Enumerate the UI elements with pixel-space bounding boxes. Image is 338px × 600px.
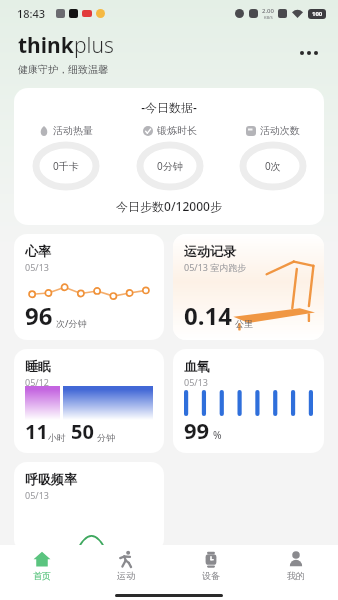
staticText: 11: [25, 418, 48, 445]
staticText: 50: [71, 418, 94, 445]
staticText: 公里: [235, 318, 253, 329]
staticText: 05/13: [184, 376, 208, 388]
staticText: 锻炼时长: [157, 124, 197, 137]
button[interactable]: 心率: [14, 234, 164, 340]
staticText: 05/13: [25, 489, 49, 501]
staticText: 分钟: [97, 432, 115, 443]
staticText: 0千卡: [53, 159, 79, 173]
staticText: 睡眠: [25, 358, 51, 374]
staticText: 运动: [117, 570, 135, 581]
button[interactable]: 运动: [84, 545, 168, 591]
button[interactable]: 呼吸频率: [14, 462, 164, 552]
staticText: 05/13 室内跑步: [184, 261, 247, 273]
staticText: 05/12: [25, 376, 49, 388]
staticText: think: [18, 31, 74, 60]
staticText: 活动次数: [260, 124, 300, 137]
staticText: plus: [74, 31, 114, 60]
staticText: 心率: [25, 243, 51, 259]
staticText: 次/分钟: [56, 317, 87, 329]
staticText: 小时: [48, 432, 66, 443]
staticText: 健康守护，细致温馨: [18, 63, 108, 76]
button[interactable]: More options: [294, 41, 324, 65]
staticText: 活动热量: [53, 124, 93, 137]
button[interactable]: -今日数据-: [14, 88, 324, 225]
staticText: 0次: [265, 159, 281, 173]
staticText: 0.14: [184, 299, 232, 332]
staticText: KB/S: [264, 15, 273, 20]
staticText: 首页: [33, 570, 51, 581]
staticText: %: [213, 428, 222, 442]
staticText: 100: [312, 10, 323, 18]
staticText: 今日步数0/12000步: [14, 198, 324, 214]
button[interactable]: 首页: [0, 545, 84, 591]
staticText: 18:43: [17, 6, 46, 21]
staticText: 96: [25, 299, 53, 332]
staticText: 0分钟: [157, 159, 183, 173]
staticText: 运动记录: [184, 243, 236, 259]
staticText: 05/13: [25, 261, 49, 273]
staticText: 设备: [202, 570, 220, 581]
button[interactable]: 血氧: [173, 349, 324, 453]
button[interactable]: 运动记录: [173, 234, 324, 340]
staticText: 呼吸频率: [25, 471, 77, 487]
staticText: -今日数据-: [14, 99, 324, 115]
staticText: 2.00: [262, 7, 274, 15]
staticText: 我的: [287, 570, 305, 581]
button[interactable]: 睡眠: [14, 349, 164, 453]
staticText: 99: [184, 415, 210, 445]
button[interactable]: 设备: [168, 545, 253, 591]
button[interactable]: 我的: [253, 545, 338, 591]
staticText: 血氧: [184, 358, 210, 374]
